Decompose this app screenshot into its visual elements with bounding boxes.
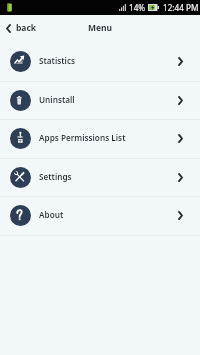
staticText: back [16,22,37,34]
button[interactable]: Settings [0,159,200,198]
button[interactable]: Uninstall [0,82,200,121]
staticText: Statistics [39,55,76,66]
staticText: About [39,209,64,220]
staticText: Settings [39,171,72,182]
staticText: 12:44 PM [163,2,199,13]
staticText: Apps Permissions List [39,132,126,143]
button[interactable]: Statistics [0,43,200,82]
other: Back [6,24,11,33]
button[interactable]: About [0,197,200,236]
button[interactable]: Back [0,15,44,43]
staticText: Menu [88,22,113,34]
staticText: Uninstall [39,94,75,105]
staticText: 14% [129,2,146,13]
button[interactable]: Apps Permissions List [0,120,200,159]
